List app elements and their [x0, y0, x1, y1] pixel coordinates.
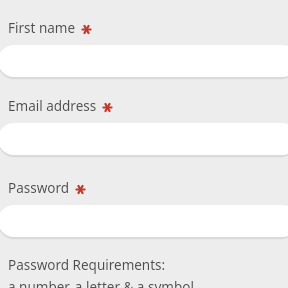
staticText: First name	[8, 19, 76, 37]
staticText: Password	[8, 179, 70, 197]
staticText: Email address	[8, 97, 97, 115]
staticText: a number, a letter & a symbol	[8, 278, 288, 288]
staticText: Password Requirements:	[8, 256, 166, 274]
